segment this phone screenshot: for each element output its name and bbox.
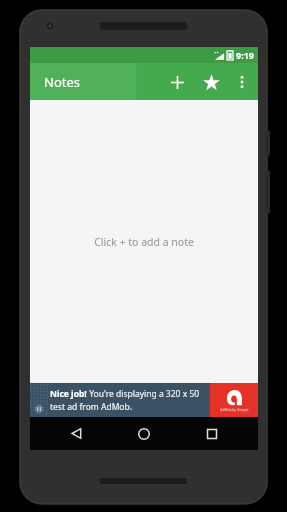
staticText: 9:19 xyxy=(236,49,254,61)
button[interactable]: Add note xyxy=(160,65,194,99)
staticText: You're displaying a 320 x 50 xyxy=(87,388,200,400)
staticText: AdMob by Google xyxy=(220,407,249,412)
button[interactable]: Recent apps xyxy=(190,417,234,450)
staticText: Notes xyxy=(44,73,80,91)
button[interactable]: More options xyxy=(228,68,256,96)
button[interactable]: Back xyxy=(54,417,98,450)
button[interactable]: Home xyxy=(122,417,166,450)
button[interactable]: Favorites xyxy=(194,65,228,99)
staticText: Click + to add a note xyxy=(94,235,194,249)
staticText: test ad from AdMob. xyxy=(50,401,133,413)
staticText: Nice job! xyxy=(50,388,87,400)
button[interactable]: Advertisement xyxy=(30,383,258,417)
